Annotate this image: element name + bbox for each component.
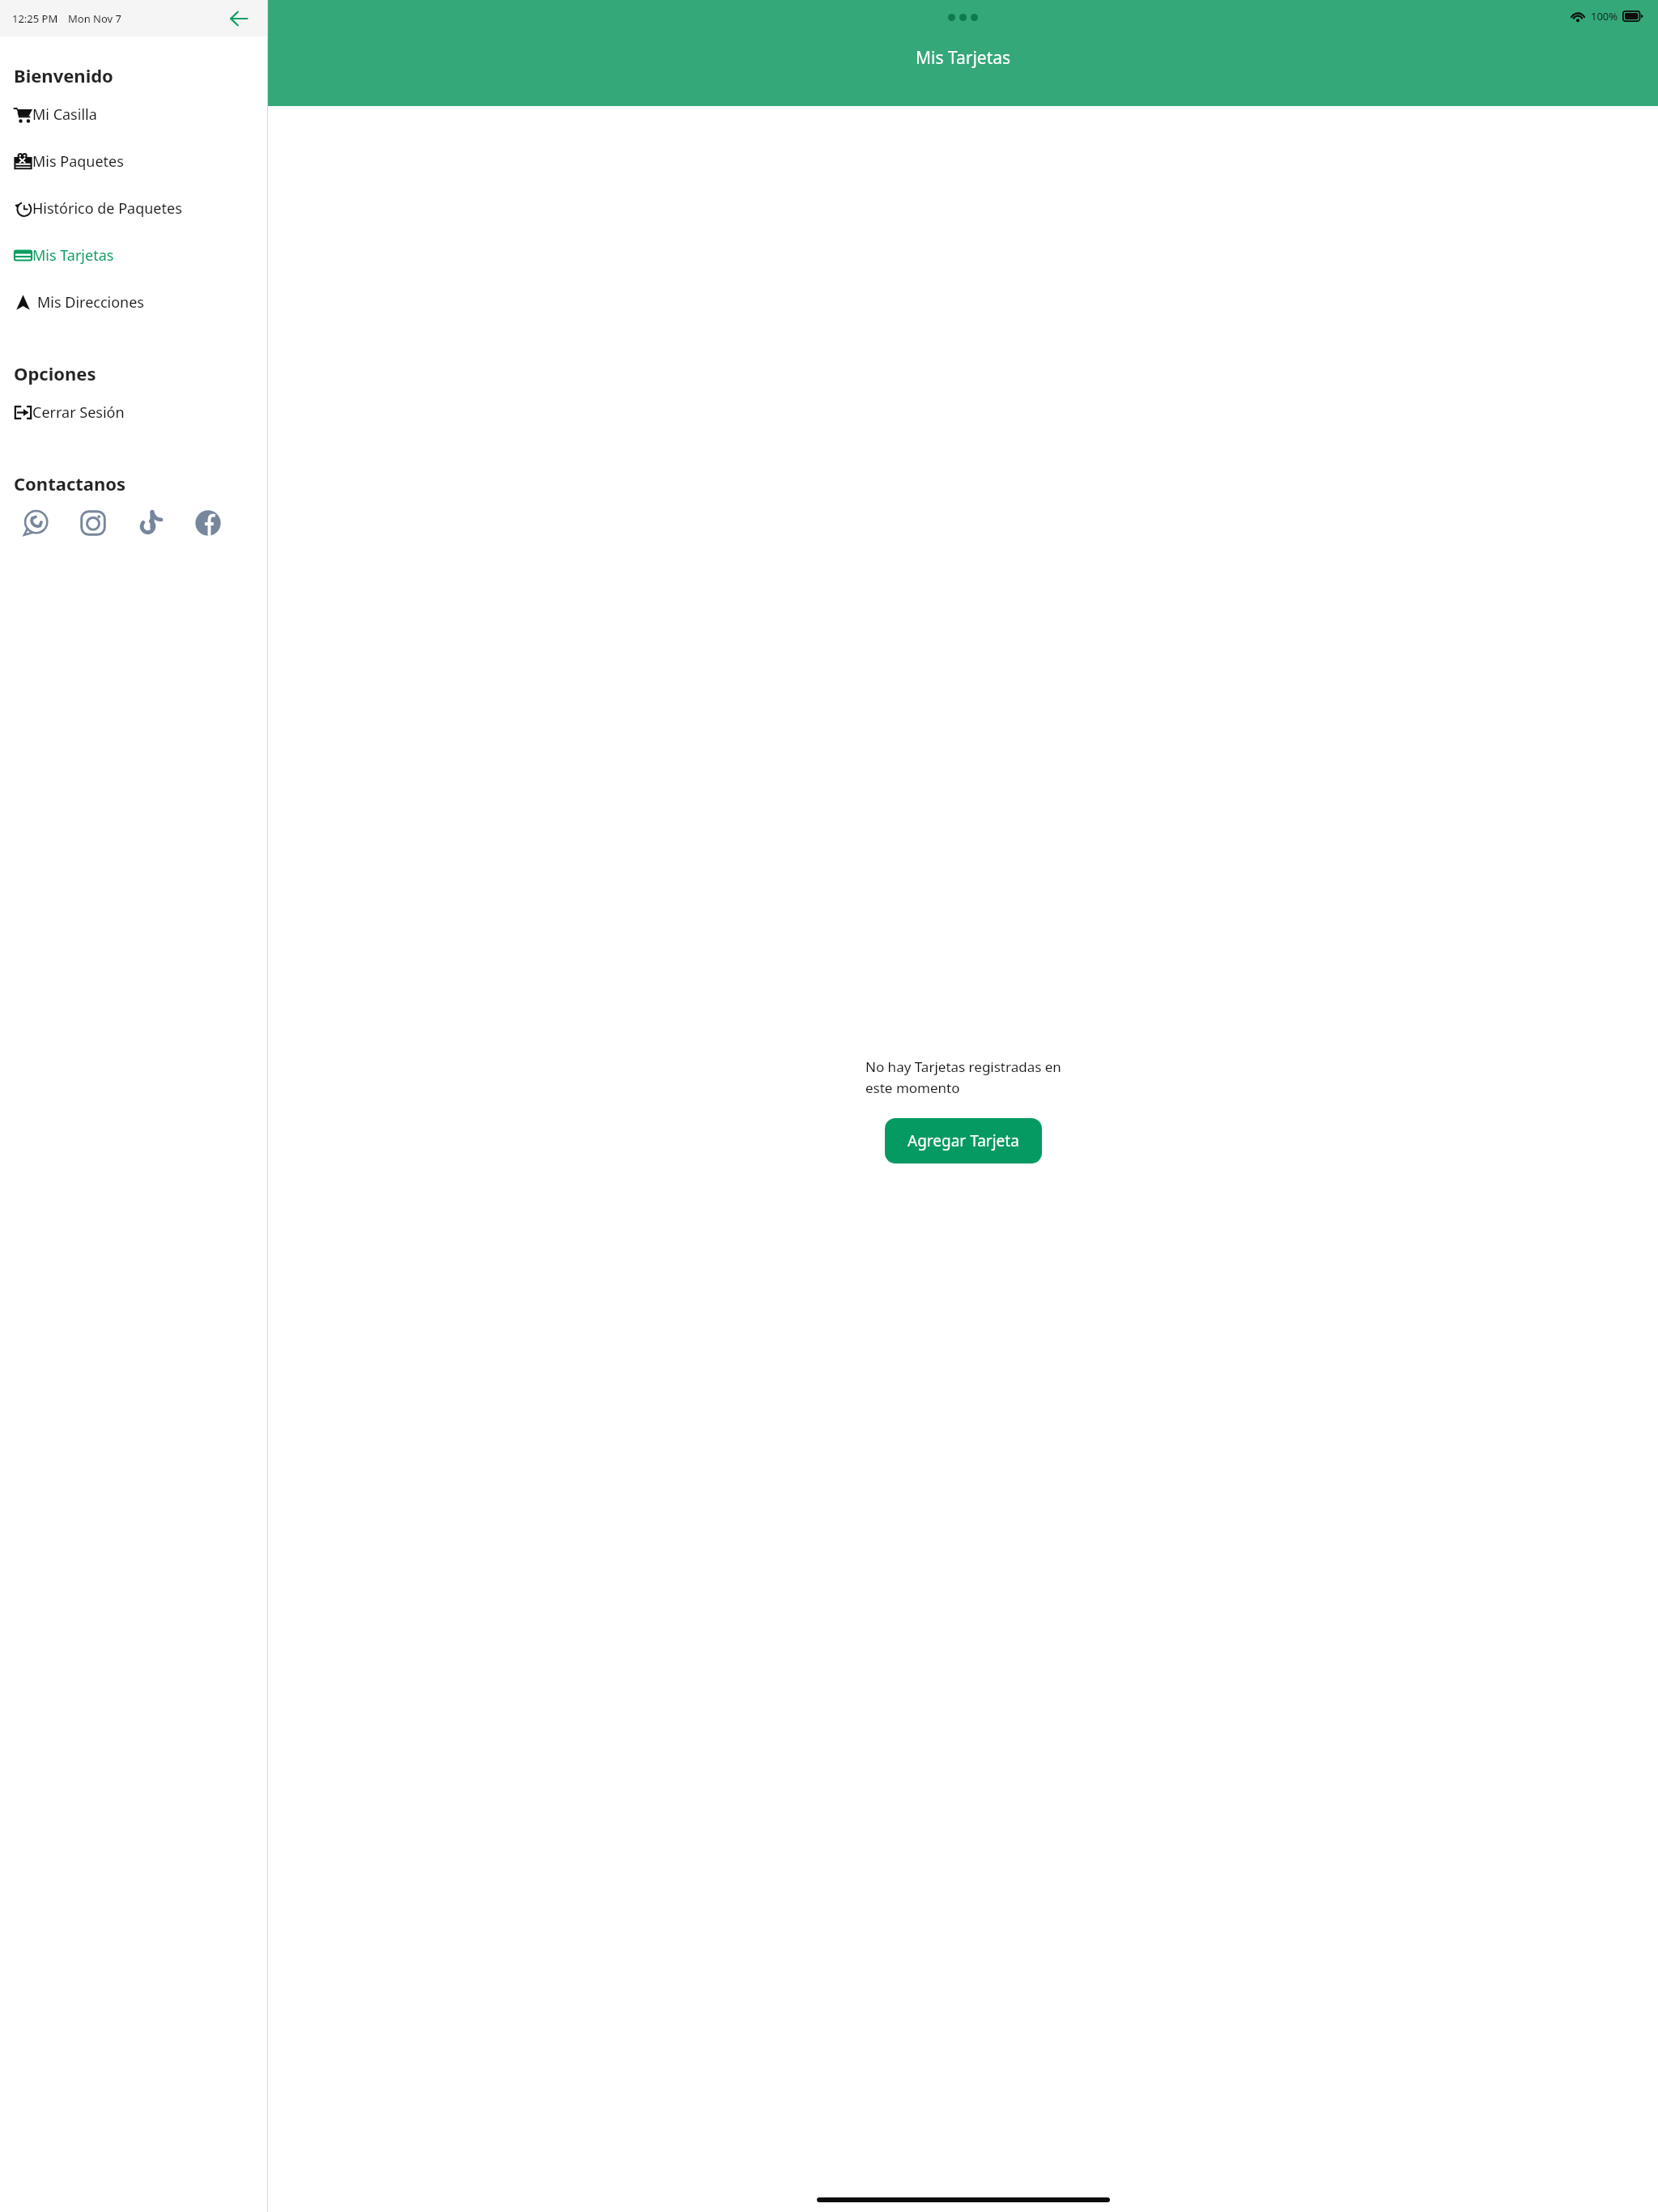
button[interactable]: Mis Paquetes bbox=[0, 138, 267, 185]
staticText: Mi Casilla bbox=[32, 104, 97, 125]
button[interactable]: Facebook bbox=[190, 505, 226, 541]
button[interactable]: Mis Direcciones bbox=[0, 279, 267, 325]
button[interactable]: Histórico de Paquetes bbox=[0, 185, 267, 232]
button[interactable]: TikTok bbox=[133, 505, 168, 541]
staticText: 100% bbox=[1591, 9, 1618, 23]
staticText: No hay Tarjetas registradas en este mome… bbox=[865, 1057, 1061, 1097]
staticText: Mis Paquetes bbox=[32, 151, 124, 172]
staticText: 12:25 PM bbox=[12, 11, 58, 26]
button[interactable]: Agregar Tarjeta bbox=[885, 1118, 1042, 1163]
staticText: Mis Tarjetas bbox=[916, 46, 1011, 70]
button[interactable]: WhatsApp bbox=[18, 505, 53, 541]
button[interactable]: Mi Casilla bbox=[0, 91, 267, 138]
button[interactable]: Mis Tarjetas bbox=[0, 232, 267, 279]
staticText: Bienvenido bbox=[14, 63, 113, 87]
staticText: Opciones bbox=[14, 361, 96, 385]
staticText: Mis Direcciones bbox=[37, 292, 144, 313]
staticText: Mon Nov 7 bbox=[68, 11, 121, 26]
button[interactable]: Back bbox=[223, 3, 254, 34]
staticText: Histórico de Paquetes bbox=[32, 198, 182, 219]
staticText: Contactanos bbox=[14, 471, 126, 496]
staticText: Agregar Tarjeta bbox=[908, 1130, 1019, 1151]
button[interactable]: Cerrar Sesión bbox=[0, 389, 267, 436]
staticText: Cerrar Sesión bbox=[32, 402, 125, 423]
staticText: Mis Tarjetas bbox=[32, 245, 114, 266]
button[interactable]: Instagram bbox=[75, 505, 111, 541]
